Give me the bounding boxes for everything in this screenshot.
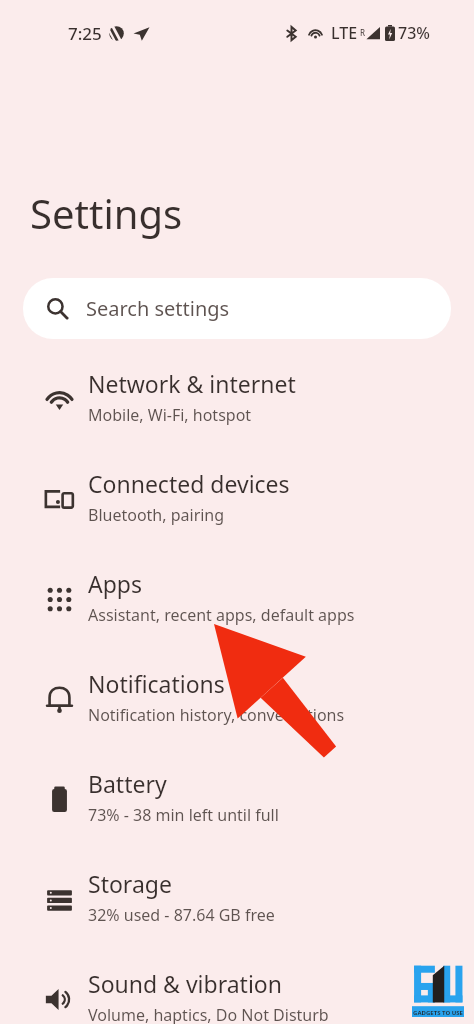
staticText: Battery	[88, 768, 167, 799]
staticText: 73%	[398, 22, 430, 44]
staticText: GADGETS TO USE	[412, 1009, 464, 1017]
staticText: Apps	[88, 568, 143, 599]
button[interactable]: Network & internet	[0, 368, 474, 468]
staticText: Notification history, conversations	[88, 704, 345, 726]
staticText: Connected devices	[88, 468, 290, 499]
staticText: Notifications	[88, 668, 225, 699]
staticText: Settings	[30, 186, 183, 240]
staticText: 7:25	[68, 22, 102, 45]
staticText: Bluetooth, pairing	[88, 504, 225, 526]
button[interactable]: Notifications	[0, 668, 474, 768]
button[interactable]: Search settings	[23, 278, 451, 339]
staticText: LTE	[331, 22, 358, 44]
button[interactable]: Connected devices	[0, 468, 474, 568]
button[interactable]: Storage	[0, 868, 474, 968]
staticText: 32% used - 87.64 GB free	[88, 904, 275, 926]
button[interactable]: Sound & vibration	[0, 968, 474, 1024]
staticText: Network & internet	[88, 368, 296, 399]
staticText: R	[360, 27, 366, 38]
staticText: Assistant, recent apps, default apps	[88, 604, 355, 626]
staticText: Storage	[88, 868, 172, 899]
staticText: Search settings	[86, 295, 230, 322]
staticText: 73% - 38 min left until full	[88, 804, 279, 826]
staticText: Mobile, Wi-Fi, hotspot	[88, 404, 252, 426]
staticText: Volume, haptics, Do Not Disturb	[88, 1004, 329, 1024]
button[interactable]: Apps	[0, 568, 474, 668]
button[interactable]: Battery	[0, 768, 474, 868]
staticText: Sound & vibration	[88, 968, 282, 999]
